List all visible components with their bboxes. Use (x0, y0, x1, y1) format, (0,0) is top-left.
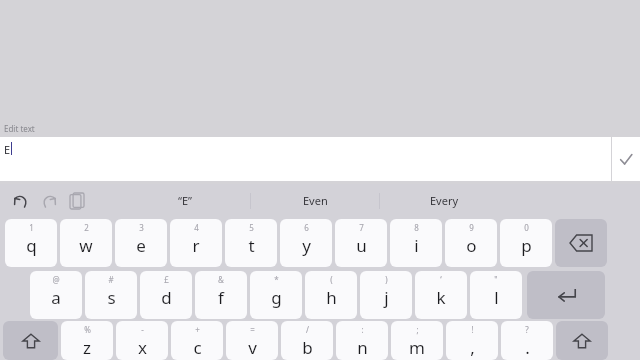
staticText: 0 (524, 222, 529, 233)
staticText: b (302, 336, 313, 359)
staticText: i (414, 234, 419, 257)
staticText: % (84, 324, 91, 335)
staticText: 1 (29, 222, 34, 233)
button[interactable]: ! (446, 321, 498, 360)
staticText: t (248, 234, 255, 257)
staticText: / (306, 324, 309, 335)
staticText: 8 (414, 222, 419, 233)
staticText: j (384, 286, 389, 309)
button[interactable]: Shift (556, 321, 608, 360)
staticText: " (494, 274, 498, 285)
staticText: ‘ (440, 274, 442, 285)
staticText: a (51, 286, 61, 309)
staticText: 7 (359, 222, 364, 233)
staticText: n (357, 336, 368, 359)
button[interactable]: Undo (8, 188, 34, 214)
button[interactable]: 8 (390, 219, 442, 267)
staticText: = (250, 324, 255, 335)
button[interactable]: & (195, 271, 247, 319)
staticText: s (107, 286, 116, 309)
button[interactable]: 0 (500, 219, 552, 267)
button[interactable]: % (61, 321, 113, 360)
staticText: + (195, 324, 200, 335)
button[interactable]: - (116, 321, 168, 360)
staticText: “E” (178, 193, 193, 208)
staticText: Edit text (4, 123, 35, 134)
staticText: ; (416, 324, 419, 335)
staticText: f (218, 286, 224, 309)
button[interactable]: ( (305, 271, 357, 319)
button[interactable]: 2 (60, 219, 112, 267)
staticText: Every (430, 193, 459, 208)
button[interactable]: / (281, 321, 333, 360)
button[interactable]: + (171, 321, 223, 360)
button[interactable]: Redo (36, 188, 62, 214)
staticText: l (494, 286, 499, 309)
button[interactable]: 3 (115, 219, 167, 267)
button[interactable]: 6 (280, 219, 332, 267)
staticText: z (83, 336, 91, 359)
button[interactable]: " (470, 271, 522, 319)
button[interactable]: Clipboard (64, 188, 90, 214)
staticText: 5 (249, 222, 254, 233)
staticText: g (271, 286, 282, 309)
staticText: x (138, 336, 147, 359)
staticText: ? (525, 324, 529, 335)
staticText: - (141, 324, 144, 335)
staticText: £ (164, 274, 169, 285)
button[interactable]: 5 (225, 219, 277, 267)
staticText: ( (330, 274, 333, 285)
button[interactable]: ‘ (415, 271, 467, 319)
button[interactable]: * (250, 271, 302, 319)
button[interactable]: = (226, 321, 278, 360)
staticText: 2 (84, 222, 89, 233)
staticText: 4 (194, 222, 199, 233)
staticText: 3 (139, 222, 144, 233)
button[interactable]: @ (30, 271, 82, 319)
staticText: : (361, 324, 364, 335)
staticText: y (302, 234, 311, 257)
staticText: E (4, 142, 11, 157)
button[interactable]: ; (391, 321, 443, 360)
button[interactable]: : (336, 321, 388, 360)
button[interactable]: 9 (445, 219, 497, 267)
staticText: h (326, 286, 337, 309)
button[interactable]: 7 (335, 219, 387, 267)
staticText: c (193, 336, 202, 359)
staticText: ) (385, 274, 388, 285)
button[interactable]: Done (612, 137, 640, 181)
button[interactable]: Every (380, 184, 508, 217)
button[interactable]: # (85, 271, 137, 319)
button[interactable]: Shift (3, 321, 58, 360)
staticText: @ (52, 274, 60, 285)
button[interactable]: £ (140, 271, 192, 319)
staticText: * (274, 274, 279, 285)
staticText: , (470, 336, 475, 359)
staticText: & (218, 274, 224, 285)
button[interactable]: “E” (120, 184, 250, 217)
staticText: r (192, 234, 200, 257)
staticText: m (409, 336, 425, 359)
staticText: u (356, 234, 367, 257)
button[interactable]: ) (360, 271, 412, 319)
staticText: w (79, 234, 93, 257)
staticText: 9 (469, 222, 474, 233)
staticText: q (26, 234, 37, 257)
staticText: # (108, 274, 114, 285)
button[interactable]: E (0, 137, 611, 181)
staticText: . (525, 336, 530, 359)
staticText: e (136, 234, 146, 257)
staticText: p (521, 234, 532, 257)
button[interactable]: ? (501, 321, 553, 360)
button[interactable] (527, 271, 605, 319)
button[interactable]: Even (251, 184, 379, 217)
staticText: o (466, 234, 477, 257)
staticText: Even (303, 193, 328, 208)
button[interactable] (555, 219, 607, 267)
staticText: ! (471, 324, 474, 335)
staticText: k (436, 286, 446, 309)
staticText: v (248, 336, 257, 359)
button[interactable]: 4 (170, 219, 222, 267)
button[interactable]: 1 (5, 219, 57, 267)
staticText: 6 (304, 222, 309, 233)
